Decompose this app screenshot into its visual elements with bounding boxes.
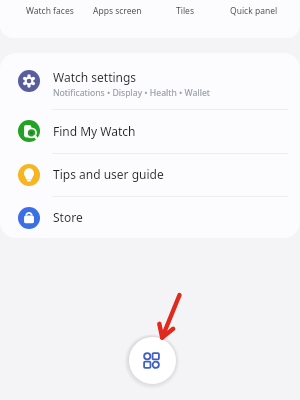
staticText: Tips and user guide: [53, 166, 164, 182]
staticText: Notifications • Display • Health • Walle…: [53, 87, 210, 99]
button[interactable]: Store: [0, 196, 300, 239]
button[interactable]: Apps screen: [129, 337, 176, 384]
button[interactable]: Find My Watch: [0, 109, 300, 153]
staticText: Tiles: [176, 5, 194, 17]
staticText: Watch settings: [53, 69, 137, 85]
staticText: Quick panel: [230, 5, 278, 17]
staticText: Apps screen: [93, 5, 142, 17]
staticText: Watch faces: [26, 5, 74, 17]
staticText: Find My Watch: [53, 123, 136, 139]
staticText: Store: [53, 209, 83, 225]
button[interactable]: Watch settings: [0, 53, 300, 109]
button[interactable]: Tiles: [168, 0, 202, 21]
button[interactable]: Apps screen: [85, 0, 150, 21]
button[interactable]: Quick panel: [222, 0, 286, 21]
button[interactable]: Tips and user guide: [0, 153, 300, 196]
button[interactable]: Watch faces: [18, 0, 82, 21]
